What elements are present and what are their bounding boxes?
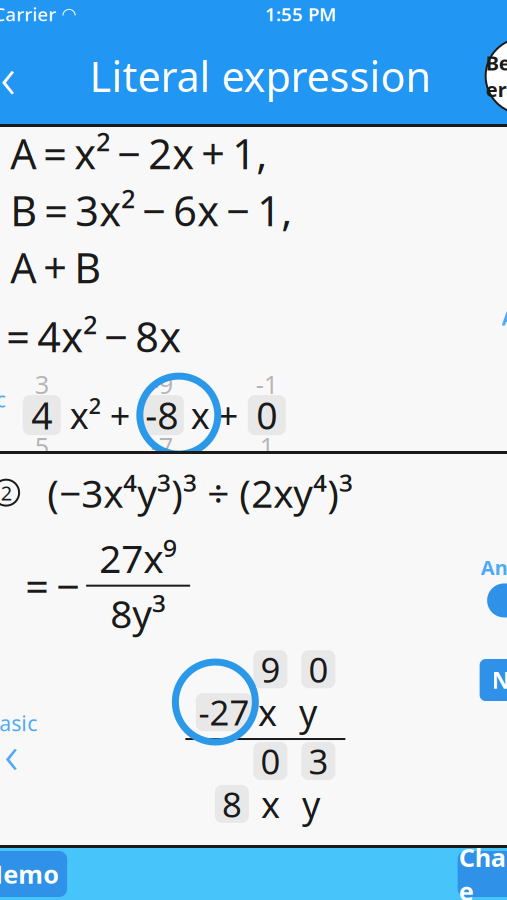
staticText: Memo [0,857,59,891]
button[interactable]: Basic [0,385,20,445]
staticText: -9 [151,367,173,401]
staticText: 8 [222,781,242,827]
staticText: 27x⁹ [99,532,177,584]
staticText: ◠ [56,4,75,24]
staticText: 8y³ [110,588,166,639]
staticText: -1 [256,367,278,401]
staticText: 1:55 PM [265,2,336,26]
button[interactable]: -1 [245,373,289,457]
staticText: -8 [145,390,178,440]
staticText: x [191,391,210,439]
staticText: 4 [31,390,52,440]
staticText: Beginner [486,49,507,102]
staticText: B = 3x² − 6x − 1, [10,183,292,238]
staticText: 5 [35,429,49,463]
staticText: 0 [308,646,328,692]
button[interactable]: Show answer [501,305,507,368]
staticText: y [302,780,320,828]
staticText: 9 [260,646,280,692]
button[interactable]: Basic [0,709,51,769]
staticText: 0 [260,738,280,784]
staticText: A + B [10,240,101,295]
button[interactable]: Show answer [481,554,507,617]
button[interactable]: Difficulty: Beginner [486,38,507,114]
staticText: -7 [151,429,173,463]
staticText: x [258,688,277,736]
staticText: (−3x⁴y³)³ ÷ (2xy⁴)³ [47,467,353,518]
staticText: x [261,780,280,828]
staticText: -27 [198,689,249,735]
button[interactable]: Next [480,659,507,701]
staticText: Basic [0,709,37,737]
button[interactable]: 3 [20,373,64,457]
staticText: = − [25,558,80,613]
staticText: Answer [481,554,507,580]
staticText: Carrier [0,2,56,26]
staticText: 0 [256,390,277,440]
staticText: + [218,391,239,439]
staticText: = 4x² − 8x [6,309,181,364]
staticText: Next [492,665,507,695]
staticText: ‹ [4,718,18,789]
staticText: 3 [308,738,328,784]
staticText: y [299,688,317,736]
staticText: ‹ [0,37,16,115]
button[interactable]: Memo [0,851,67,897]
staticText: x² [70,391,102,439]
staticText: 3 [35,367,49,401]
staticText: + [110,391,131,439]
button[interactable]: Back [0,44,35,108]
button[interactable]: -9 [137,373,187,457]
staticText: Literal expression [89,49,431,103]
staticText: 2 [1,479,12,506]
staticText: Basic [0,385,6,413]
staticText: A = x² − 2x + 1, [10,126,267,181]
staticText: 1 [260,429,274,463]
staticText: Challenge [459,840,507,900]
staticText: Answer [501,305,507,331]
button[interactable]: Challenge [458,851,507,897]
